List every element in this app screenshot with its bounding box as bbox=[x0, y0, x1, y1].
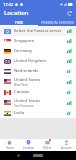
button[interactable]: Back bbox=[17, 154, 20, 157]
staticText: New York bbox=[14, 83, 28, 87]
staticText: Canada bbox=[14, 89, 29, 95]
staticText: FREE bbox=[15, 20, 24, 25]
button[interactable]: FREE bbox=[0, 18, 38, 26]
staticText: Netherlands bbox=[14, 68, 39, 74]
button[interactable]: United States bbox=[0, 76, 76, 87]
staticText: Germany bbox=[14, 48, 33, 54]
staticText: Account bbox=[61, 146, 72, 150]
button[interactable]: Account bbox=[57, 139, 76, 151]
button[interactable]: United States bbox=[0, 97, 76, 108]
staticText: India bbox=[14, 110, 25, 116]
button[interactable]: Location bbox=[19, 139, 38, 151]
staticText: Singapore bbox=[14, 38, 35, 44]
staticText: Location bbox=[4, 9, 29, 17]
staticText: United Kingdom bbox=[14, 58, 47, 64]
button[interactable]: Offers bbox=[38, 139, 57, 151]
button[interactable]: Singapore bbox=[0, 36, 76, 46]
staticText: Location bbox=[23, 146, 35, 150]
staticText: Offers bbox=[43, 146, 52, 150]
button[interactable]: India bbox=[0, 108, 76, 118]
button[interactable]: United Kingdom bbox=[0, 56, 76, 66]
button[interactable]: Germany bbox=[0, 46, 76, 56]
staticText: United States bbox=[14, 98, 41, 104]
button[interactable]: Select the Fastest server bbox=[0, 26, 76, 36]
button[interactable]: PREMIUM SERVERS bbox=[38, 18, 76, 26]
button[interactable]: Home bbox=[0, 139, 19, 151]
staticText: PREMIUM SERVERS bbox=[41, 20, 74, 25]
button[interactable]: Home bbox=[33, 154, 43, 157]
staticText: Home bbox=[6, 146, 14, 150]
button[interactable]: Canada bbox=[0, 87, 76, 97]
staticText: 17:02 bbox=[3, 2, 14, 7]
button[interactable]: Refresh bbox=[65, 9, 74, 18]
staticText: United States bbox=[14, 77, 41, 83]
staticText: San Francisco bbox=[14, 104, 34, 108]
staticText: Select the Fastest server bbox=[14, 28, 62, 34]
button[interactable]: Netherlands bbox=[0, 66, 76, 76]
